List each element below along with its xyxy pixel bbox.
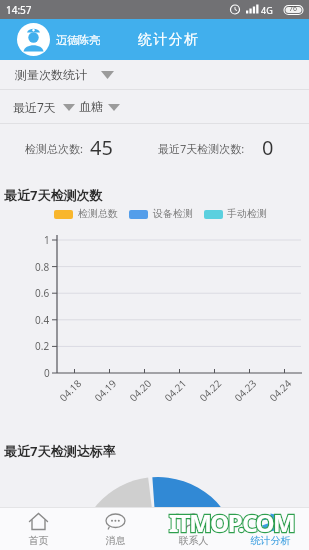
staticText: 最近7天 — [13, 99, 56, 115]
button[interactable]: 最近7天 — [0, 90, 309, 123]
staticText: 测量次数统计 — [15, 67, 87, 82]
button[interactable]: 测量次数统计 — [0, 60, 309, 90]
staticText: 设备检测 — [153, 207, 193, 220]
staticText: 76 — [289, 4, 298, 14]
staticText: 手动检测 — [227, 207, 267, 220]
button[interactable]: 统计分析 — [232, 508, 309, 549]
staticText: 检测总数 — [78, 207, 118, 220]
button[interactable]: 首页 — [0, 508, 77, 549]
staticText: 首页 — [0, 534, 77, 548]
staticText: 消息 — [77, 534, 154, 548]
button[interactable]: 联系人 — [155, 508, 232, 549]
staticText: 0 — [262, 134, 274, 161]
staticText: 检测总次数: — [25, 141, 83, 156]
staticText: ITMOP.COM — [169, 506, 295, 539]
staticText: 血糖 — [79, 99, 103, 114]
staticText: 最近7天检测达标率 — [4, 442, 116, 460]
staticText: 45 — [90, 134, 113, 161]
staticText: 4G — [261, 4, 273, 16]
staticText: 14:57 — [6, 3, 32, 17]
staticText: 联系人 — [155, 534, 232, 548]
staticText: 统计分析 — [232, 534, 309, 548]
staticText: 统计分析 — [137, 31, 199, 49]
staticText: 最近7天检测次数 — [4, 186, 103, 204]
staticText: 迈德陈亮 — [56, 33, 100, 47]
staticText: ITMOP.COM — [169, 506, 295, 539]
staticText: 最近7天检测次数: — [158, 141, 245, 156]
button[interactable]: 消息 — [77, 508, 154, 549]
button[interactable] — [17, 23, 50, 56]
